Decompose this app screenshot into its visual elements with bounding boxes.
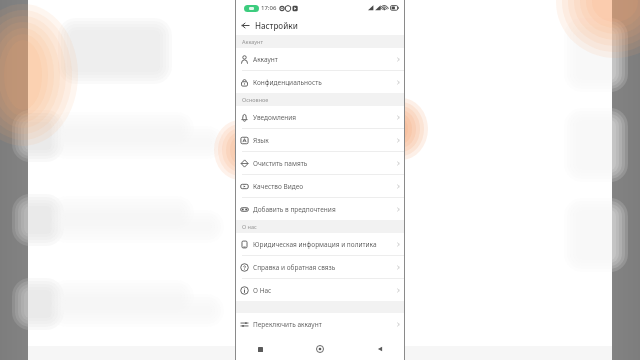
button[interactable]: Добавить в предпочтения [235, 198, 405, 220]
staticText: Переключить аккаунт [253, 320, 391, 329]
staticText: Настройки [255, 20, 298, 31]
staticText: О нас [242, 223, 257, 230]
staticText: Уведомления [253, 113, 391, 122]
button[interactable]: Домой [311, 340, 329, 358]
staticText: О Нас [253, 286, 391, 295]
staticText: 17:06 [261, 4, 277, 12]
button[interactable]: Переключить аккаунт [235, 313, 405, 335]
button[interactable]: Назад [235, 15, 255, 35]
staticText: Справка и обратная связь [253, 263, 391, 272]
button[interactable]: Уведомления [235, 106, 405, 128]
button[interactable]: Язык [235, 129, 405, 151]
staticText: Добавить в предпочтения [253, 205, 391, 214]
button[interactable]: Конфиденциальность [235, 71, 405, 93]
staticText: Очистить память [253, 159, 391, 168]
staticText: Основное [242, 96, 269, 103]
button[interactable]: О Нас [235, 279, 405, 301]
button[interactable]: Очистить память [235, 152, 405, 174]
button[interactable]: Назад [371, 340, 389, 358]
button[interactable]: Качество Видео [235, 175, 405, 197]
button[interactable]: Аккаунт [235, 48, 405, 70]
staticText: Аккаунт [242, 38, 263, 45]
staticText: Аккаунт [253, 55, 391, 64]
button[interactable]: Недавние [251, 340, 269, 358]
staticText: Язык [253, 136, 391, 145]
button[interactable]: Справка и обратная связь [235, 256, 405, 278]
staticText: Качество Видео [253, 182, 391, 191]
button[interactable]: Юридическая информация и политика [235, 233, 405, 255]
staticText: Юридическая информация и политика [253, 240, 391, 249]
staticText: Конфиденциальность [253, 78, 391, 87]
